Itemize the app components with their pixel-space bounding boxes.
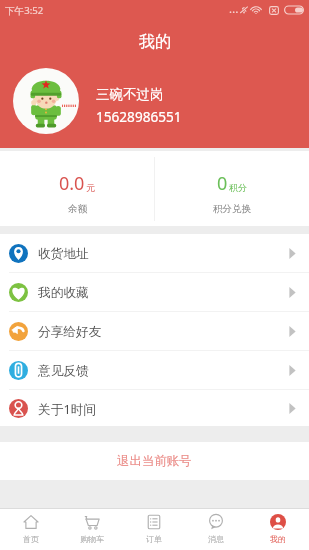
staticText: 分享给好友: [38, 324, 102, 340]
staticText: 0.0: [59, 171, 85, 196]
button[interactable]: 关于1时间: [0, 390, 309, 426]
staticText: 我的: [270, 534, 286, 544]
staticText: 0: [217, 171, 228, 196]
button[interactable]: 首页: [0, 509, 61, 550]
staticText: 退出当前账号: [117, 453, 192, 469]
staticText: 积分: [229, 182, 247, 193]
button[interactable]: 分享给好友: [0, 312, 309, 351]
staticText: 订单: [146, 534, 162, 544]
staticText: 意见反馈: [38, 363, 89, 379]
staticText: 下午3:52: [5, 4, 44, 17]
staticText: 购物车: [80, 534, 104, 544]
staticText: 余额: [68, 203, 87, 215]
button[interactable]: 我的收藏: [0, 273, 309, 312]
button[interactable]: 0: [154, 151, 309, 226]
button[interactable]: 退出当前账号: [0, 442, 309, 480]
staticText: 首页: [23, 534, 39, 544]
button[interactable]: 0.0: [0, 151, 154, 226]
staticText: 15628986551: [96, 107, 182, 126]
staticText: 元: [86, 182, 95, 193]
button[interactable]: 订单: [123, 509, 185, 550]
staticText: 积分兑换: [213, 203, 251, 215]
button[interactable]: 收货地址: [0, 234, 309, 273]
staticText: 我的收藏: [38, 285, 89, 301]
button[interactable]: 我的: [247, 509, 309, 550]
button[interactable]: 意见反馈: [0, 351, 309, 390]
staticText: 关于1时间: [38, 400, 97, 417]
staticText: 三碗不过岗: [96, 86, 164, 103]
button[interactable]: 购物车: [61, 509, 123, 550]
staticText: 收货地址: [38, 246, 89, 262]
button[interactable]: 消息: [185, 509, 247, 550]
staticText: 我的: [139, 32, 171, 52]
staticText: 消息: [208, 534, 224, 544]
